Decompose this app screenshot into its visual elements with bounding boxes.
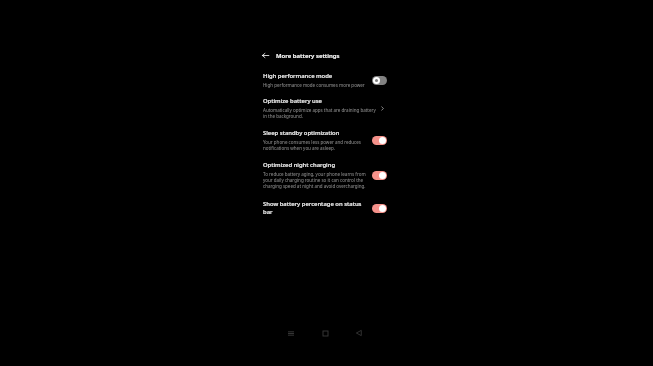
staticText: High performance mode [263, 72, 333, 80]
button[interactable]: Back [259, 49, 272, 62]
button[interactable]: On [372, 171, 387, 180]
staticText: Automatically optimize apps that are dra… [263, 107, 376, 119]
staticText: Show battery percentage on status bar [263, 200, 367, 216]
button[interactable]: Recent apps [280, 323, 302, 343]
button[interactable]: Back [348, 323, 370, 343]
staticText: Your phone consumes less power and reduc… [263, 139, 367, 151]
staticText: Optimize battery use [263, 97, 322, 105]
button[interactable]: On [372, 204, 387, 213]
button[interactable]: Sleep standby optimization [258, 123, 391, 157]
button[interactable]: On [372, 136, 387, 145]
staticText: Optimized night charging [263, 161, 336, 169]
staticText: To reduce battery aging, your phone lear… [263, 171, 367, 189]
staticText: More battery settings [276, 52, 340, 60]
button[interactable]: Optimize battery use [258, 91, 391, 125]
staticText: High performance mode consumes more powe… [263, 82, 365, 88]
button[interactable]: Show battery percentage on status bar [258, 194, 391, 222]
button[interactable]: Optimized night charging [258, 155, 391, 195]
button[interactable]: High performance mode [258, 66, 391, 94]
button[interactable]: Off [372, 76, 387, 85]
button[interactable]: Home [314, 323, 336, 343]
staticText: Sleep standby optimization [263, 129, 340, 137]
button[interactable]: Open [377, 103, 387, 113]
